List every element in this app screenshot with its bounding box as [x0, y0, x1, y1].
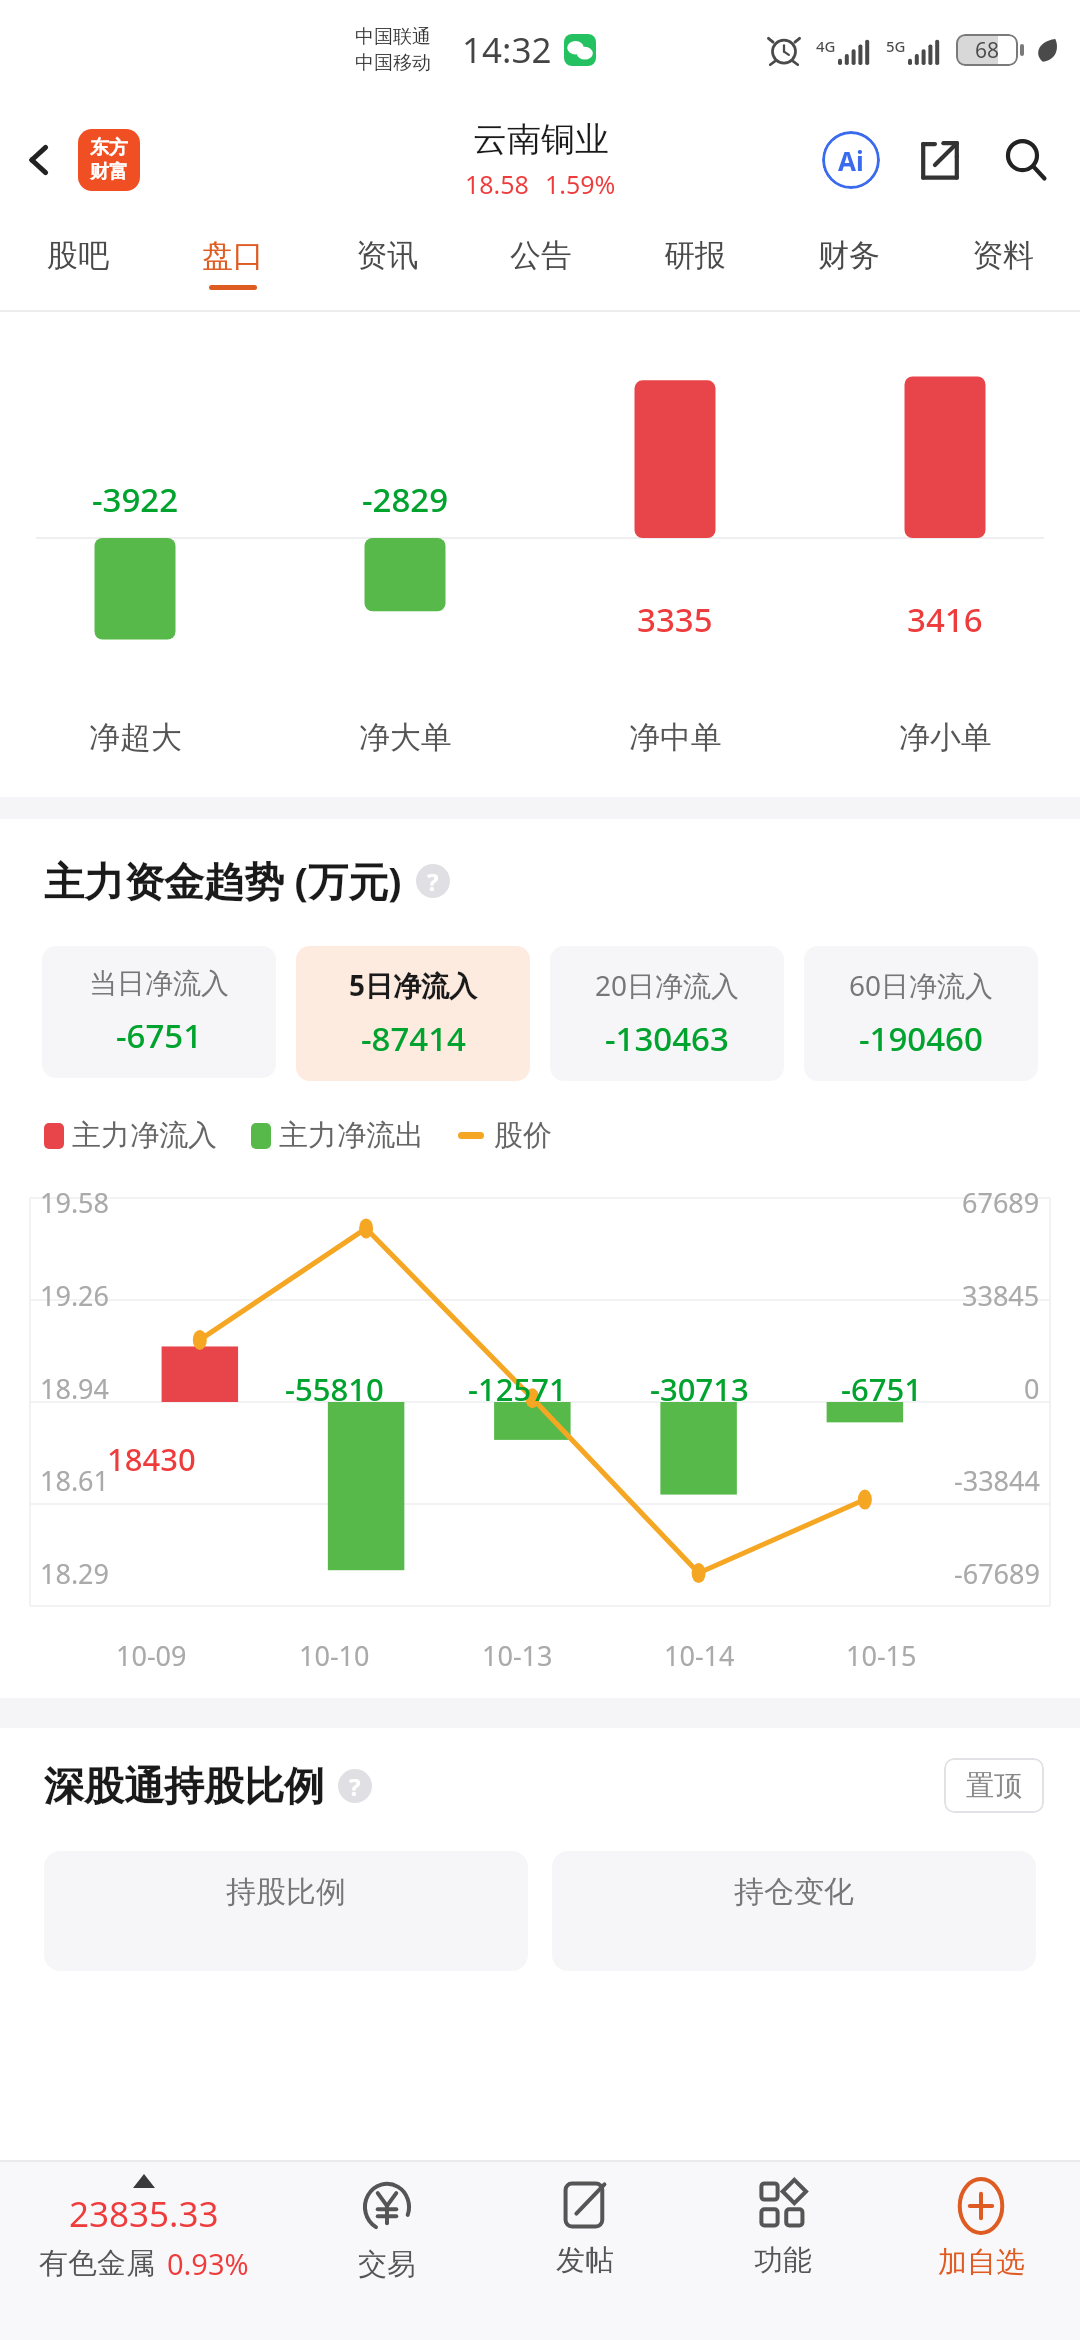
staticText: -55810: [285, 1368, 384, 1410]
button[interactable]: 盘口: [155, 220, 310, 310]
staticText: 中国移动: [355, 51, 431, 75]
staticText: 持股比例: [226, 1873, 346, 1911]
staticText: 云南铜业: [473, 118, 609, 161]
button[interactable]: 返回: [8, 129, 70, 191]
staticText: 18.94: [40, 1370, 110, 1407]
button[interactable]: 说明: [416, 864, 450, 898]
button[interactable]: 20日净流入: [550, 946, 784, 1081]
staticText: 股吧: [47, 236, 109, 275]
staticText: 主力净流出: [279, 1117, 424, 1154]
staticText: -33844: [954, 1462, 1040, 1499]
staticText: 交易: [358, 2246, 416, 2283]
staticText: 18.58: [465, 167, 529, 201]
staticText: 净小单: [899, 718, 992, 757]
button[interactable]: 置顶: [944, 1758, 1044, 1813]
staticText: 68: [975, 36, 1000, 65]
button[interactable]: 搜索: [996, 130, 1056, 190]
staticText: 净大单: [359, 718, 452, 757]
staticText: 10-09: [116, 1637, 187, 1674]
staticText: 资讯: [356, 236, 418, 275]
button[interactable]: 加自选: [882, 2162, 1080, 2340]
staticText: 有色金属: [39, 2245, 155, 2282]
staticText: 持仓变化: [734, 1873, 854, 1911]
staticText: -87414: [361, 1016, 466, 1061]
staticText: -30713: [650, 1368, 749, 1410]
staticText: 23835.33: [69, 2190, 219, 2238]
button[interactable]: 资讯: [310, 220, 464, 310]
staticText: 18430: [107, 1438, 196, 1480]
staticText: 4G: [816, 36, 836, 56]
button[interactable]: 功能: [684, 2162, 882, 2340]
staticText: -130463: [605, 1016, 729, 1061]
staticText: 股价: [494, 1117, 552, 1154]
staticText: 深股通持股比例: [44, 1761, 324, 1811]
staticText: 功能: [754, 2242, 812, 2279]
staticText: 3416: [907, 597, 983, 642]
staticText: 主力资金趋势 (万元): [44, 853, 402, 908]
button[interactable]: 持股比例: [44, 1851, 528, 1971]
staticText: -6751: [116, 1013, 203, 1058]
staticText: 18.61: [40, 1462, 110, 1499]
button[interactable]: 说明: [338, 1769, 372, 1803]
button[interactable]: 分享: [910, 130, 970, 190]
staticText: 19.26: [40, 1277, 110, 1314]
staticText: 公告: [510, 236, 572, 275]
button[interactable]: 公告: [464, 220, 618, 310]
button[interactable]: 股吧: [0, 220, 155, 310]
staticText: 置顶: [966, 1768, 1022, 1803]
button[interactable]: 5日净流入: [296, 946, 530, 1081]
staticText: 净超大: [89, 718, 182, 757]
button[interactable]: 交易: [288, 2162, 486, 2340]
staticText: 财务: [818, 236, 880, 275]
staticText: 0: [1024, 1370, 1040, 1407]
staticText: -12571: [468, 1368, 567, 1410]
staticText: 研报: [664, 236, 726, 275]
staticText: 资料: [972, 236, 1034, 275]
staticText: ?: [349, 1770, 361, 1803]
button[interactable]: 当日净流入: [42, 946, 276, 1078]
staticText: 1.59%: [545, 167, 616, 201]
staticText: ?: [427, 865, 439, 898]
staticText: -3922: [92, 477, 179, 522]
button[interactable]: 持仓变化: [552, 1851, 1036, 1971]
button[interactable]: 财务: [772, 220, 926, 310]
button[interactable]: 发帖: [486, 2162, 684, 2340]
staticText: 5日净流入: [349, 966, 478, 1004]
staticText: 净中单: [629, 718, 722, 757]
staticText: 财富: [90, 160, 128, 184]
staticText: 67689: [962, 1184, 1040, 1221]
staticText: -6751: [841, 1368, 922, 1410]
staticText: -2829: [362, 477, 449, 522]
staticText: 加自选: [938, 2244, 1025, 2281]
staticText: Ai: [838, 143, 864, 178]
staticText: 10-10: [299, 1637, 370, 1674]
staticText: -190460: [859, 1016, 983, 1061]
staticText: 33845: [962, 1277, 1040, 1314]
staticText: 5G: [886, 36, 906, 56]
staticText: 中国联通: [355, 25, 431, 49]
staticText: 18.29: [40, 1555, 110, 1592]
button[interactable]: AI助手: [818, 127, 884, 193]
staticText: -67689: [954, 1555, 1040, 1592]
staticText: 20日净流入: [595, 966, 740, 1004]
button[interactable]: 研报: [618, 220, 772, 310]
staticText: 14:32: [462, 26, 552, 74]
staticText: 发帖: [556, 2242, 614, 2279]
button[interactable]: 资料: [926, 220, 1080, 310]
staticText: 东方: [90, 136, 128, 160]
button[interactable]: 60日净流入: [804, 946, 1038, 1081]
staticText: 0.93%: [167, 2244, 249, 2283]
staticText: 主力净流入: [72, 1117, 217, 1154]
staticText: 60日净流入: [849, 966, 994, 1004]
staticText: 10-14: [664, 1637, 735, 1674]
staticText: 10-15: [846, 1637, 917, 1674]
staticText: 3335: [637, 597, 713, 642]
staticText: 10-13: [482, 1637, 553, 1674]
staticText: 19.58: [40, 1184, 110, 1221]
staticText: 盘口: [202, 236, 264, 275]
button[interactable]: 东方财富: [78, 129, 140, 191]
staticText: 当日净流入: [89, 966, 229, 1001]
button[interactable]: 23835.33: [0, 2162, 288, 2340]
